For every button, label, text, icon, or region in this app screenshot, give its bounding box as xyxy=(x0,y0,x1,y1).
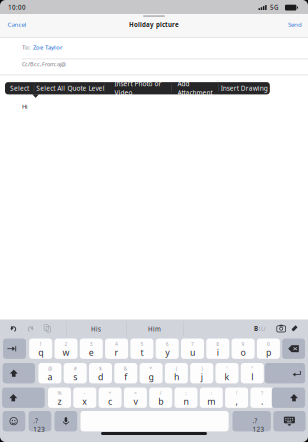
button[interactable]: Insert Drawing xyxy=(219,82,270,94)
staticText: , xyxy=(236,395,238,407)
button[interactable]: 1 xyxy=(29,338,52,359)
button[interactable]: # xyxy=(64,363,87,383)
button[interactable]: Cancel xyxy=(7,21,51,28)
button[interactable]: Paste xyxy=(44,325,51,332)
button[interactable]: Add Attachment xyxy=(171,82,219,94)
button[interactable]: Holiday picture xyxy=(109,21,199,28)
staticText: e xyxy=(89,346,94,358)
button[interactable]: Select All xyxy=(34,82,67,94)
button[interactable]: Shift xyxy=(272,387,305,408)
button[interactable]: 4 xyxy=(105,338,128,359)
button[interactable]: Redo xyxy=(27,325,35,332)
staticText: m xyxy=(207,395,215,407)
staticText: To: xyxy=(22,43,33,51)
button[interactable]: Insert Photo or Video xyxy=(105,82,171,94)
button[interactable]: - xyxy=(73,387,96,408)
button[interactable]: 6 xyxy=(156,338,179,359)
staticText: 4 xyxy=(115,341,118,347)
staticText: v xyxy=(133,395,137,407)
button[interactable]: Caps Lock xyxy=(3,363,35,383)
button[interactable]: 9 xyxy=(232,338,255,359)
staticText: l xyxy=(251,371,253,383)
staticText: s xyxy=(73,371,77,383)
button[interactable]: Attach file xyxy=(290,325,298,332)
button[interactable]: 0 xyxy=(257,338,280,359)
button[interactable]: Space xyxy=(80,411,229,431)
button[interactable]: Text format xyxy=(252,326,266,332)
button[interactable]: ( xyxy=(165,363,188,383)
button[interactable]: Numbers and symbols xyxy=(29,411,51,431)
button[interactable]: " xyxy=(241,363,264,383)
staticText: Add Attachment xyxy=(177,79,212,97)
button[interactable]: Hide keyboard xyxy=(273,411,306,431)
staticText: 9 xyxy=(242,341,245,347)
button[interactable]: + xyxy=(99,387,122,408)
staticText: y xyxy=(165,346,169,358)
button[interactable]: / xyxy=(149,387,172,408)
button[interactable]: ? xyxy=(250,387,273,408)
button[interactable]: Return xyxy=(265,363,305,383)
staticText: i xyxy=(217,346,219,358)
staticText: 6 xyxy=(166,341,169,347)
button[interactable]: ; xyxy=(174,387,197,408)
button[interactable]: Shift xyxy=(2,387,45,408)
button[interactable]: 2 xyxy=(54,338,77,359)
staticText: @ xyxy=(48,365,52,372)
staticText: o xyxy=(241,346,246,358)
button[interactable]: Cc/Bcc, From: aj@ xyxy=(22,61,222,68)
button[interactable]: 3 xyxy=(80,338,103,359)
button[interactable]: 7 xyxy=(181,338,204,359)
button[interactable]: : xyxy=(200,387,223,408)
button[interactable]: & xyxy=(114,363,137,383)
staticText: f xyxy=(124,371,127,383)
staticText: r xyxy=(115,346,119,358)
staticText: 0 xyxy=(267,341,270,347)
button[interactable]: 5 xyxy=(130,338,153,359)
staticText: 10:00 xyxy=(8,3,26,12)
button[interactable]: ) xyxy=(190,363,213,383)
button[interactable]: % xyxy=(48,387,71,408)
staticText: U xyxy=(261,324,265,333)
button[interactable]: Dictate xyxy=(54,411,77,431)
staticText: ( xyxy=(176,365,177,372)
button[interactable]: ' xyxy=(215,363,238,383)
button[interactable]: Emoji xyxy=(3,411,25,431)
staticText: 2 xyxy=(64,341,67,347)
staticText: Holiday picture xyxy=(129,20,179,29)
staticText: . xyxy=(261,395,263,407)
button[interactable]: ! xyxy=(225,387,248,408)
staticText: + xyxy=(109,390,112,396)
button[interactable]: Send xyxy=(262,21,302,28)
staticText: d xyxy=(98,371,103,383)
button[interactable]: His xyxy=(66,321,126,336)
staticText: ' xyxy=(226,365,227,372)
button[interactable]: Select xyxy=(5,82,34,94)
staticText: u xyxy=(190,346,195,358)
button[interactable]: Quote Level xyxy=(67,82,105,94)
staticText: : xyxy=(211,390,212,396)
staticText: & xyxy=(124,365,128,372)
staticText: $ xyxy=(99,365,102,372)
button[interactable]: * xyxy=(140,363,163,383)
button[interactable]: = xyxy=(124,387,147,408)
button[interactable]: @ xyxy=(38,363,61,383)
staticText: 5G xyxy=(270,3,278,12)
button[interactable]: To: xyxy=(22,44,222,51)
button[interactable]: $ xyxy=(89,363,112,383)
staticText: Select xyxy=(10,84,29,93)
button[interactable]: Undo xyxy=(9,325,17,332)
staticText: B xyxy=(254,324,258,333)
button[interactable]: Numbers and symbols xyxy=(232,411,271,431)
button[interactable]: 8 xyxy=(206,338,229,359)
staticText: Cc/Bcc, From: aj@ xyxy=(22,60,66,68)
staticText: % xyxy=(57,390,61,396)
staticText: g xyxy=(149,371,154,383)
button[interactable]: Tab xyxy=(3,338,26,359)
button[interactable]: Him xyxy=(126,321,183,336)
staticText: h xyxy=(174,371,179,383)
staticText: Zoe Taylor xyxy=(33,43,63,51)
button[interactable]: Delete xyxy=(282,338,305,359)
button[interactable]: Insert photo xyxy=(277,325,286,332)
staticText: .?123 xyxy=(252,416,264,434)
staticText: Cancel xyxy=(7,20,26,28)
